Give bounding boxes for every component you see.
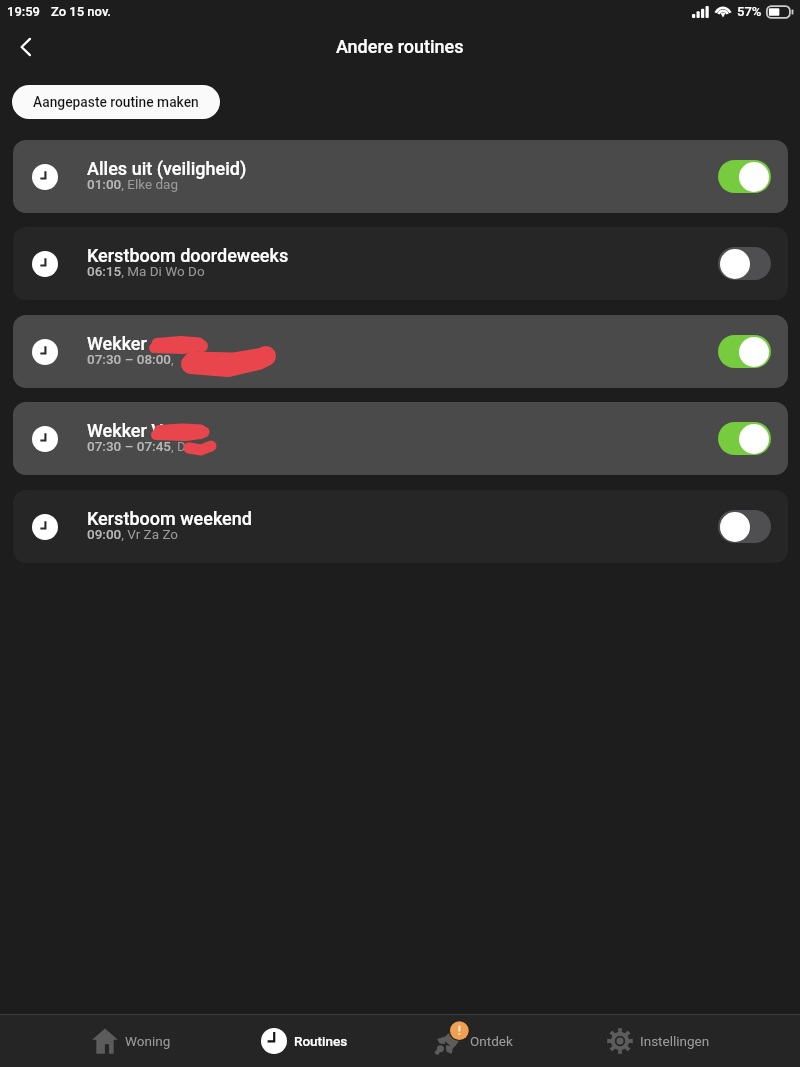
staticText: Wekker	[87, 333, 147, 354]
button[interactable]: Alles uit (veiligheid)	[13, 140, 788, 213]
button[interactable]: Aangepaste routine maken	[12, 85, 220, 119]
staticText: Routines	[294, 1033, 348, 1049]
button[interactable]: Routines	[261, 1014, 348, 1067]
staticText: 06:15, Ma Di Wo Do	[87, 263, 205, 279]
button[interactable]: Wekker	[13, 315, 788, 388]
staticText: Wekker V	[87, 420, 163, 441]
staticText: Kerstboom weekend	[87, 508, 252, 529]
staticText: Ontdek	[470, 1033, 513, 1049]
staticText: 57%	[737, 4, 762, 19]
staticText: Aangepaste routine maken	[33, 94, 199, 110]
staticText: Woning	[125, 1033, 171, 1049]
button[interactable]: Ontdek	[437, 1014, 513, 1067]
staticText: Andere routines	[336, 36, 464, 57]
staticText: Zo 15 nov.	[51, 4, 111, 19]
button[interactable]: Routine aan	[718, 335, 771, 368]
button[interactable]: Kerstboom doordeweeks	[13, 227, 788, 300]
staticText: Kerstboom doordeweeks	[87, 245, 289, 266]
staticText: 01:00, Elke dag	[87, 176, 178, 192]
staticText: Instellingen	[640, 1033, 710, 1049]
staticText: 09:00, Vr Za Zo	[87, 526, 179, 542]
staticText: 07:30 – 07:45, D	[87, 438, 186, 454]
button[interactable]: Routine uit	[718, 247, 771, 280]
button[interactable]: Routine aan	[718, 422, 771, 455]
staticText: Alles uit (veiligheid)	[87, 158, 247, 179]
button[interactable]: Routine aan	[718, 160, 771, 193]
staticText: 19:59	[7, 4, 41, 19]
button[interactable]: Woning	[92, 1014, 171, 1067]
button[interactable]: Kerstboom weekend	[13, 490, 788, 563]
staticText: 07:30 – 08:00,	[87, 351, 174, 367]
button[interactable]: Terug	[4, 25, 48, 69]
button[interactable]: Wekker V	[13, 402, 788, 475]
button[interactable]: Instellingen	[607, 1014, 710, 1067]
button[interactable]: Routine uit	[718, 510, 771, 543]
